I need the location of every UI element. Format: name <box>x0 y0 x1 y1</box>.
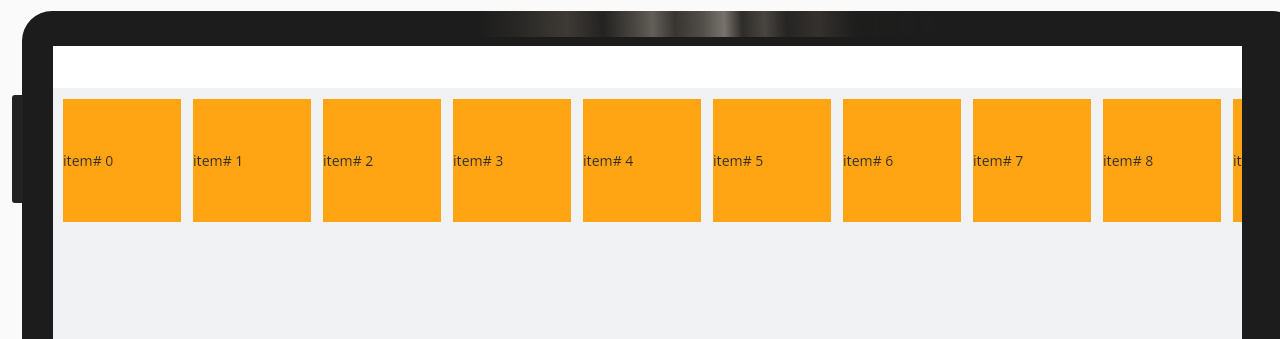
staticText: item# 7 <box>973 151 1024 170</box>
button[interactable]: Side button <box>12 95 23 203</box>
staticText: item# 1 <box>193 151 244 170</box>
button[interactable]: item# 3 <box>453 99 571 222</box>
staticText: item# 2 <box>323 151 374 170</box>
button[interactable]: item# 8 <box>1103 99 1221 222</box>
button[interactable]: item# 5 <box>713 99 831 222</box>
staticText: item# 9 <box>1233 151 1242 170</box>
button[interactable]: item# 4 <box>583 99 701 222</box>
staticText: item# 3 <box>453 151 504 170</box>
staticText: item# 6 <box>843 151 894 170</box>
button[interactable]: item# 0 <box>63 99 181 222</box>
staticText: item# 8 <box>1103 151 1154 170</box>
button[interactable]: item# 9 <box>1233 99 1242 222</box>
button[interactable]: item# 6 <box>843 99 961 222</box>
button[interactable]: item# 7 <box>973 99 1091 222</box>
staticText: item# 5 <box>713 151 764 170</box>
button[interactable]: item# 2 <box>323 99 441 222</box>
staticText: item# 4 <box>583 151 634 170</box>
button[interactable]: item# 1 <box>193 99 311 222</box>
staticText: item# 0 <box>63 151 114 170</box>
